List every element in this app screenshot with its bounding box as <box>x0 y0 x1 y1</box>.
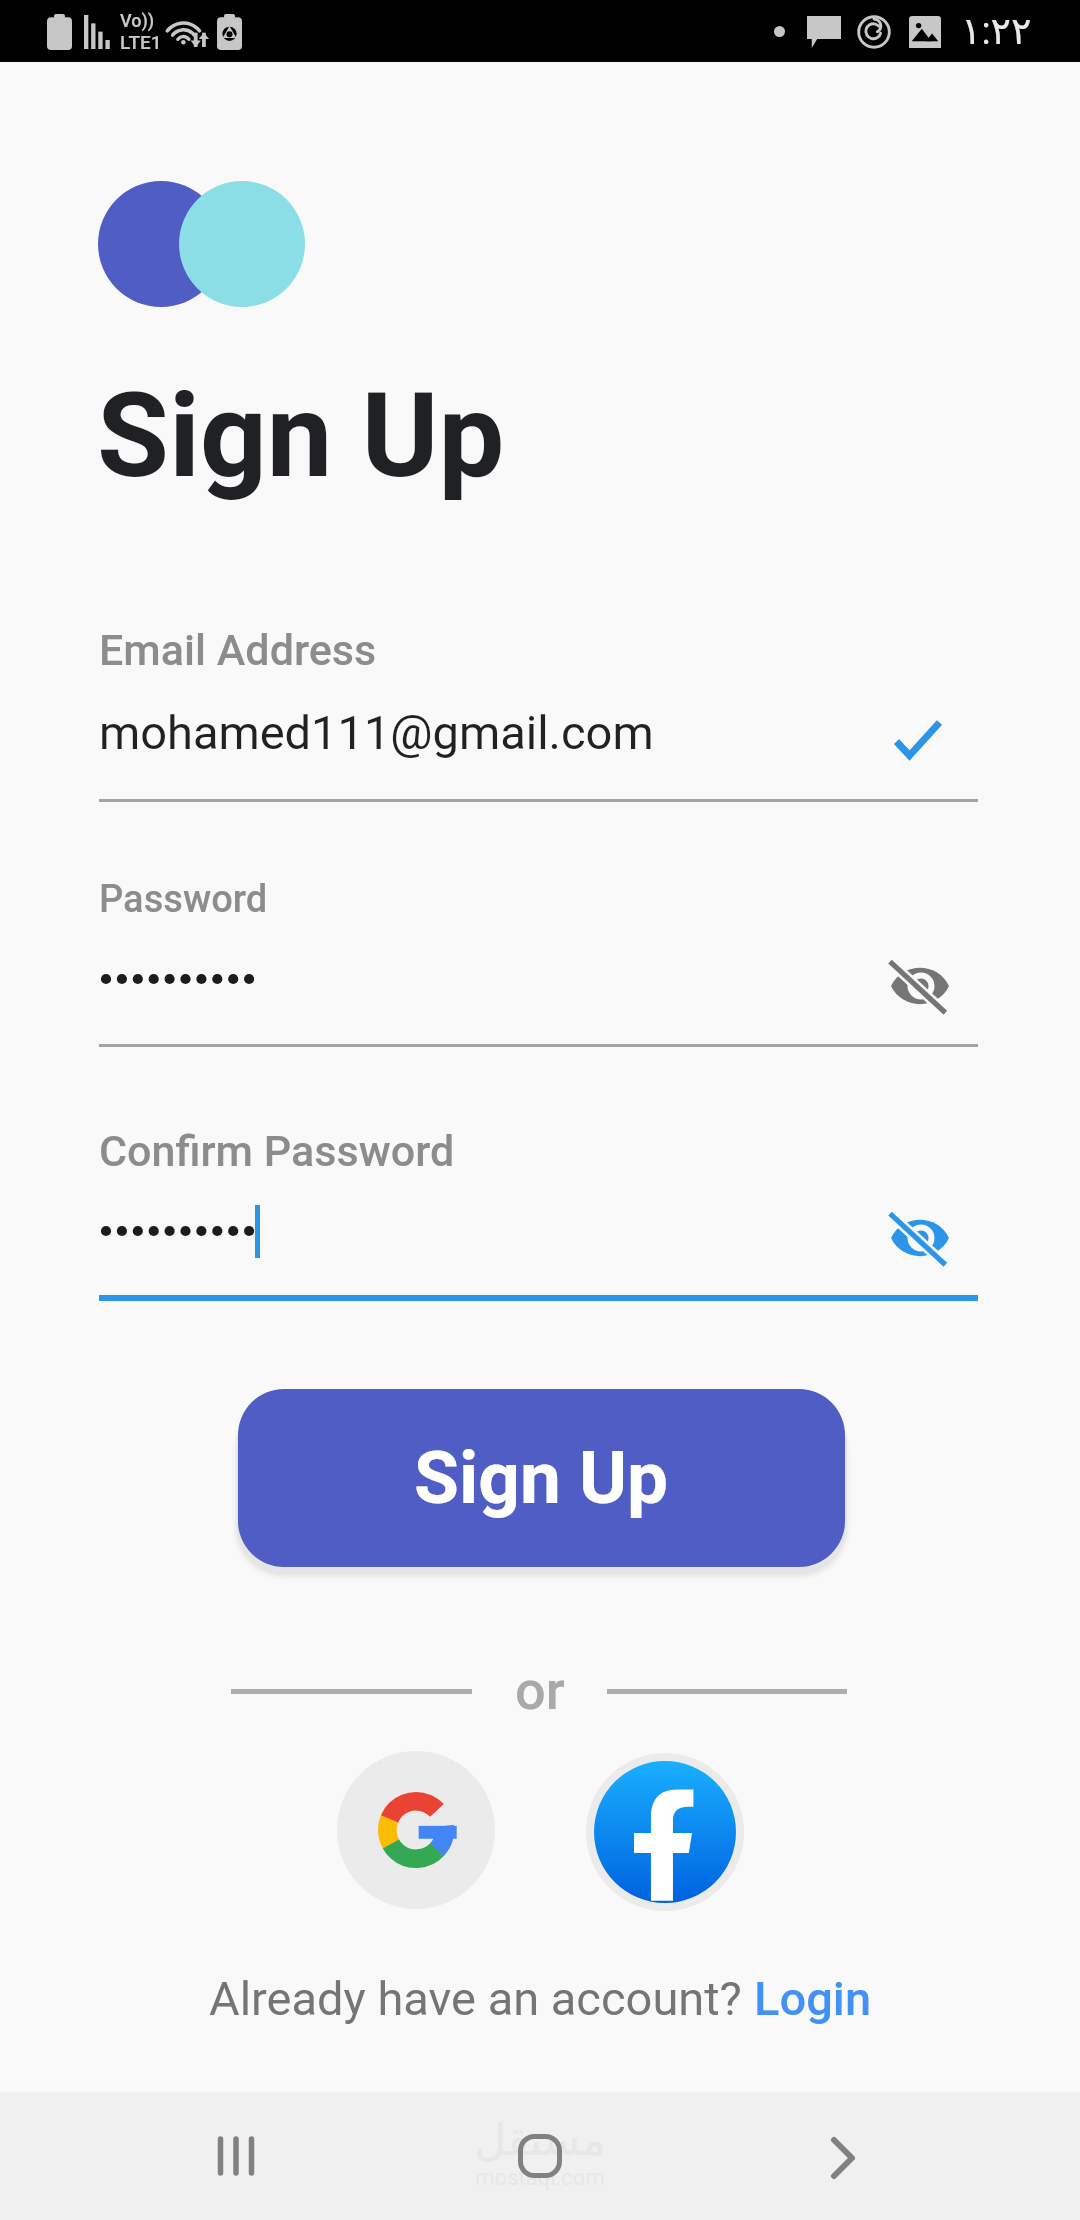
staticText: Login <box>754 1971 872 2026</box>
staticText: مستقل <box>474 2114 606 2165</box>
staticText: Already have an account? <box>209 1971 754 2026</box>
button[interactable]: Already have an account? <box>209 1971 872 2026</box>
staticText: Email Address <box>99 625 377 675</box>
staticText: mostaql.com <box>475 2165 605 2191</box>
staticText: Sign Up <box>97 367 505 504</box>
button[interactable]: Sign up with Google <box>337 1751 495 1909</box>
staticText: Vo)) <box>120 10 155 31</box>
button[interactable]: Sign up with Facebook <box>586 1753 744 1911</box>
staticText: Password <box>99 877 268 922</box>
staticText: mohamed111@gmail.com <box>99 705 654 760</box>
staticText: ١:٢٢ <box>961 9 1032 54</box>
staticText: LTE1 <box>120 31 162 53</box>
button[interactable]: Sign Up <box>238 1389 845 1567</box>
button[interactable]: Recent apps <box>196 2116 276 2196</box>
staticText: or <box>515 1659 565 1722</box>
staticText: Sign Up <box>414 1435 669 1521</box>
button[interactable]: Toggle password visibility <box>878 1198 962 1278</box>
staticText: Confirm Password <box>99 1126 455 1176</box>
button[interactable]: Back <box>803 2118 883 2198</box>
button[interactable]: Home <box>500 2116 580 2196</box>
button[interactable]: Email verified <box>874 700 962 778</box>
button[interactable]: Toggle password visibility <box>878 946 962 1026</box>
